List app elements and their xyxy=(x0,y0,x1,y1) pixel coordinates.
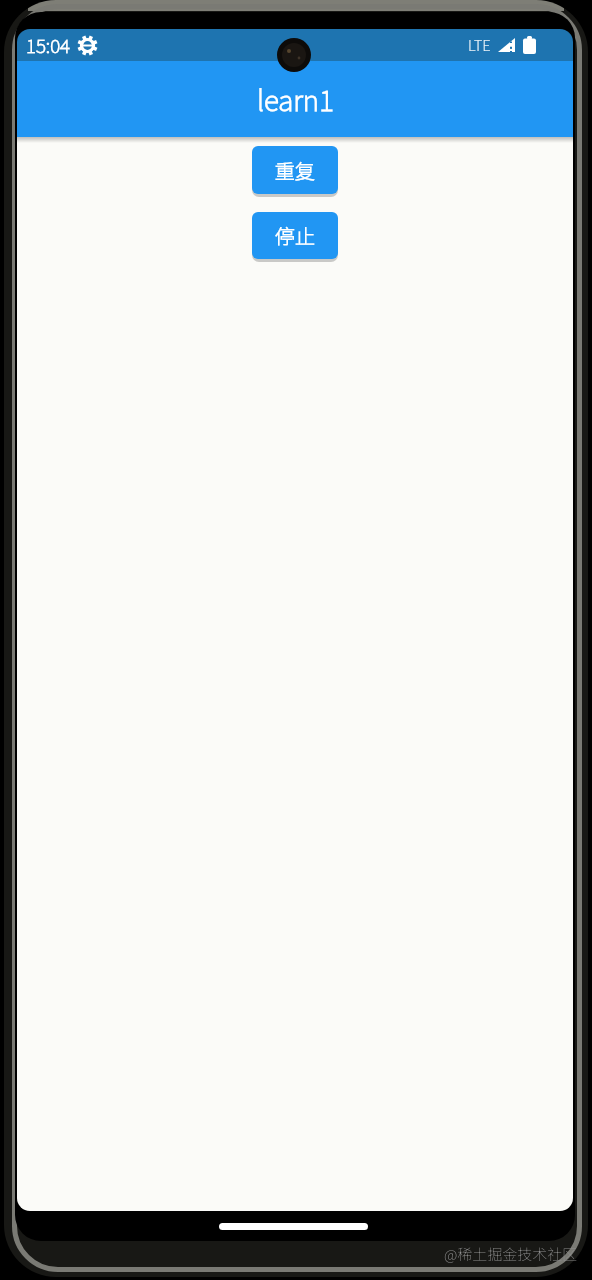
staticText: @稀土掘金技术社区 xyxy=(444,1243,578,1265)
staticText: 15:04 xyxy=(26,31,70,59)
staticText: 停止 xyxy=(275,221,315,250)
button[interactable]: 停止 xyxy=(252,212,338,259)
button[interactable]: 重复 xyxy=(252,146,338,194)
staticText: LTE xyxy=(468,34,491,56)
staticText: 重复 xyxy=(275,156,315,185)
staticText: learn1 xyxy=(257,79,334,120)
